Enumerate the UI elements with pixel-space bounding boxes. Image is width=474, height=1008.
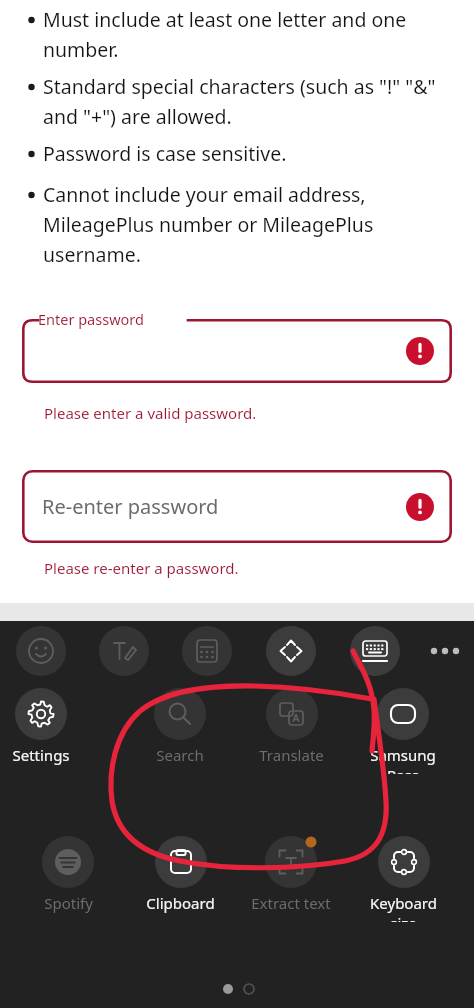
button[interactable]: Emoji [16, 626, 66, 676]
staticText: Settings [12, 745, 70, 765]
staticText: Extract text [251, 893, 331, 913]
staticText: Keyboard size [370, 893, 437, 922]
button[interactable]: Move keyboard [266, 626, 316, 676]
staticText: Please enter a valid password. [44, 403, 257, 423]
button[interactable]: Samsung Pass [347, 688, 459, 774]
staticText: Search [156, 745, 204, 765]
staticText: Clipboard [146, 893, 215, 913]
staticText: Cannot include your email address, Milea… [43, 181, 454, 267]
button[interactable]: More options [425, 631, 465, 671]
button[interactable]: Clipboard [124, 836, 236, 922]
staticText: Password is case sensitive. [43, 140, 287, 167]
staticText: Spotify [44, 893, 93, 913]
staticText: Translate [259, 745, 324, 765]
staticText: Must include at least one letter and one… [43, 6, 454, 62]
button[interactable] [22, 319, 452, 383]
button[interactable]: Translate [235, 688, 347, 774]
staticText: Re-enter password [42, 493, 219, 520]
button[interactable]: Handwriting [99, 626, 149, 676]
button[interactable]: Keyboard modes [350, 626, 400, 676]
button[interactable]: Keyboard size [347, 836, 459, 922]
staticText: Samsung Pass [370, 745, 436, 774]
button[interactable]: Search [124, 688, 236, 774]
button[interactable]: Extract text [235, 836, 347, 922]
staticText: Enter password [38, 309, 144, 329]
staticText: Please re-enter a password. [44, 558, 239, 578]
button[interactable]: Re-enter password [22, 470, 452, 543]
button[interactable]: Settings [0, 688, 97, 774]
button[interactable]: Number pad [182, 626, 232, 676]
button[interactable]: Spotify [12, 836, 124, 922]
staticText: Standard special characters (such as "!"… [43, 73, 454, 129]
